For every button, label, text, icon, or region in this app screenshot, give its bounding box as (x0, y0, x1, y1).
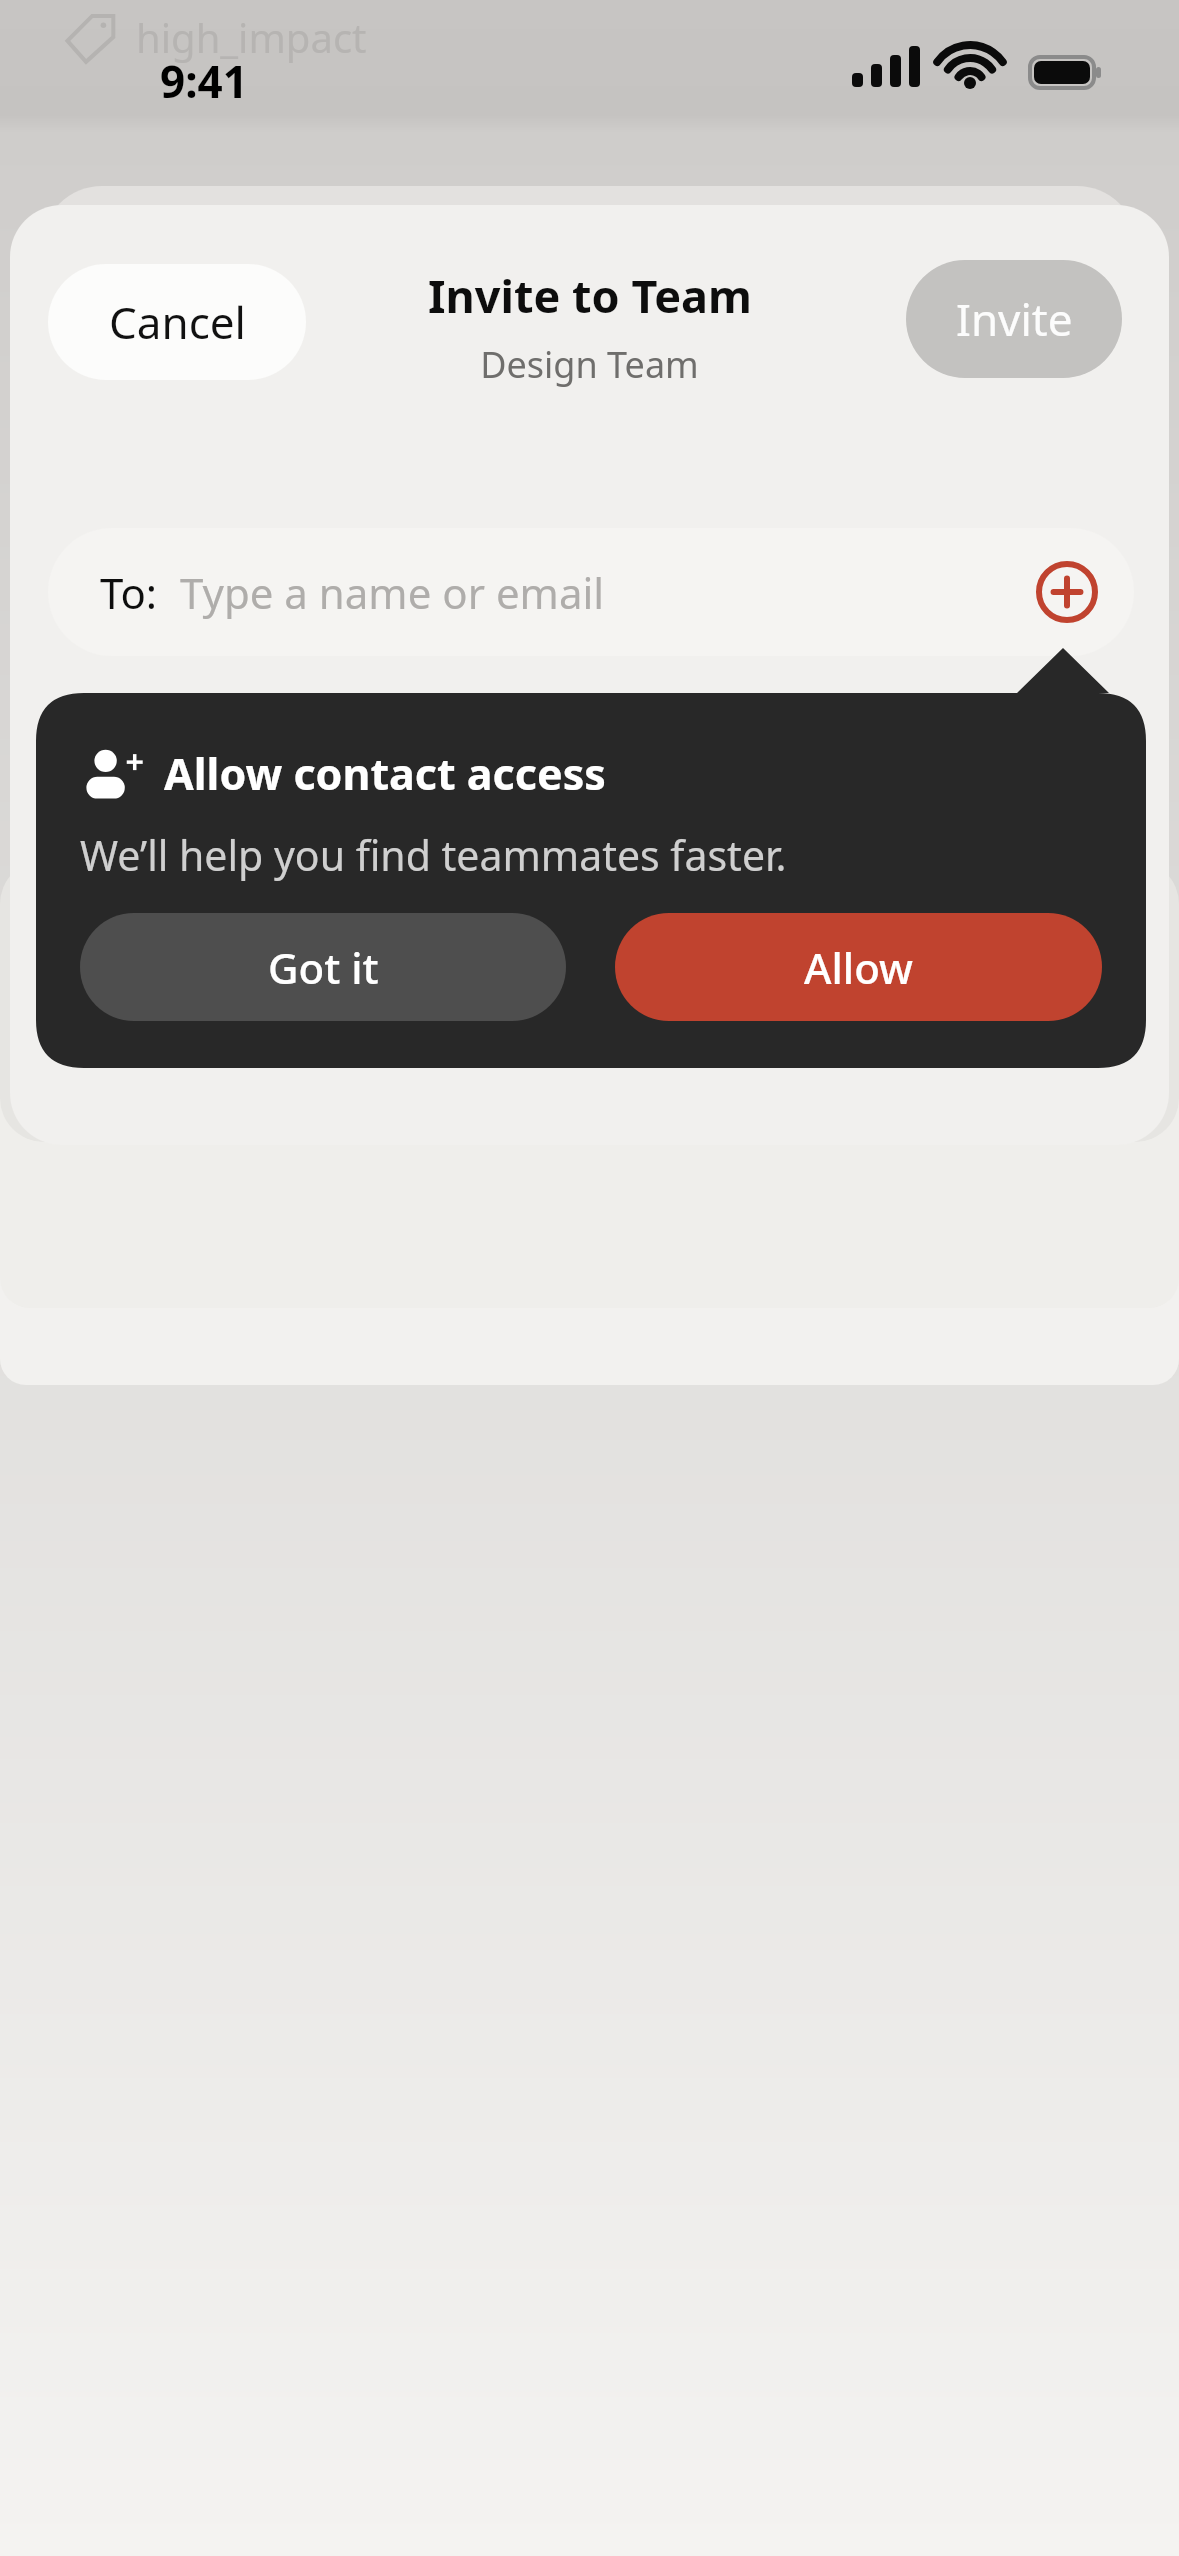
staticText: To: (100, 564, 158, 621)
button[interactable]: Add contact (1036, 561, 1098, 623)
button[interactable]: Cancel (48, 264, 306, 380)
button[interactable]: Allow (615, 913, 1102, 1021)
staticText: Invite (956, 289, 1073, 349)
button[interactable]: Invite (906, 260, 1122, 378)
staticText: We’ll help you find teammates faster. (80, 827, 787, 883)
staticText: Design Team (480, 340, 699, 389)
staticText: high_impact (136, 10, 367, 64)
staticText: Type a name or email (180, 564, 605, 621)
staticText: Allow (804, 939, 913, 996)
staticText: 9:41 (160, 51, 248, 111)
button[interactable]: To: (48, 528, 1134, 656)
button[interactable]: Got it (80, 913, 566, 1021)
staticText: Got it (268, 939, 379, 996)
staticText: Cancel (109, 292, 246, 352)
staticText: Allow contact access (164, 744, 606, 803)
staticText: Invite to Team (428, 265, 752, 326)
